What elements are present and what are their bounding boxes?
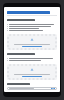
button[interactable] <box>7 87 57 90</box>
button[interactable]: Upload file <box>7 34 57 50</box>
button[interactable]: Upload file <box>7 64 57 80</box>
